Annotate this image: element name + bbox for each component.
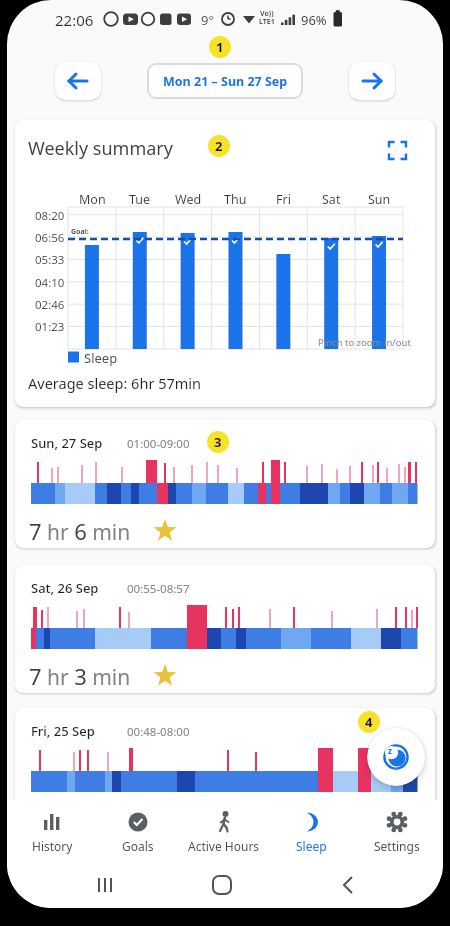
- staticText: 7 hr 6 min: [29, 516, 131, 546]
- staticText: Fri: [276, 191, 291, 208]
- staticText: 05:33: [35, 252, 65, 268]
- staticText: Sun: [368, 191, 391, 208]
- staticText: Vo)): [260, 9, 274, 19]
- button[interactable]: Goals: [95, 810, 181, 854]
- staticText: 00:48-08:00: [127, 724, 190, 740]
- staticText: 06:56: [35, 230, 65, 246]
- staticText: 7 hr 3 min: [29, 661, 131, 691]
- staticText: 9°: [201, 11, 215, 29]
- button[interactable]: History: [9, 810, 95, 854]
- button[interactable]: Weekly summary: [15, 120, 435, 407]
- staticText: 22:06: [55, 10, 94, 30]
- staticText: LTE1: [259, 17, 275, 27]
- staticText: 4: [365, 713, 373, 731]
- button[interactable]: Settings: [354, 810, 440, 854]
- button[interactable]: Active Hours: [181, 810, 267, 854]
- staticText: Pinch to zoom in/out: [318, 336, 411, 349]
- staticText: Active Hours: [188, 838, 260, 854]
- staticText: Sat: [322, 191, 341, 208]
- staticText: 2: [215, 137, 223, 155]
- staticText: 02:46: [35, 297, 65, 313]
- staticText: 01:23: [35, 319, 65, 335]
- button[interactable]: [55, 62, 101, 100]
- staticText: Mon: [79, 191, 106, 208]
- staticText: Goals: [122, 838, 154, 854]
- staticText: z: [388, 745, 392, 756]
- staticText: Sun, 27 Sep: [31, 434, 103, 452]
- button[interactable]: z: [367, 728, 425, 786]
- staticText: Weekly summary: [28, 136, 173, 161]
- button[interactable]: [349, 62, 395, 100]
- staticText: Mon 21 – Sun 27 Sep: [163, 73, 288, 90]
- staticText: Tue: [129, 191, 151, 208]
- staticText: 01:00-09:00: [127, 436, 190, 452]
- staticText: 00:55-08:57: [127, 581, 190, 597]
- staticText: 3: [214, 433, 222, 451]
- staticText: Fri, 25 Sep: [31, 722, 95, 740]
- staticText: 96%: [301, 11, 327, 29]
- staticText: 1: [216, 38, 224, 56]
- staticText: Wed: [175, 191, 202, 208]
- staticText: Sat, 26 Sep: [31, 579, 99, 597]
- button[interactable]: Sleep: [268, 810, 354, 854]
- staticText: Goal:: [71, 227, 89, 237]
- staticText: Sleep: [84, 349, 118, 367]
- button[interactable]: Fri, 25 Sep: [15, 708, 435, 848]
- staticText: History: [32, 838, 73, 854]
- staticText: Thu: [224, 191, 247, 208]
- staticText: 08:20: [35, 208, 65, 224]
- button[interactable]: Mon 21 – Sun 27 Sep: [147, 63, 303, 99]
- button[interactable]: Sat, 26 Sep: [15, 565, 435, 693]
- staticText: Average sleep: 6hr 57min: [28, 373, 201, 393]
- staticText: Sleep: [296, 838, 327, 854]
- staticText: Settings: [374, 838, 420, 854]
- button[interactable]: Sun, 27 Sep: [15, 420, 435, 548]
- staticText: 04:10: [35, 275, 65, 291]
